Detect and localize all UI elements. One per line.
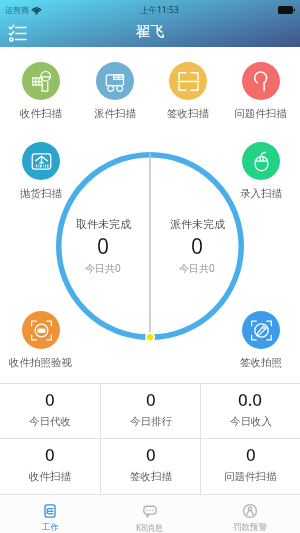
staticText: 翟飞 — [136, 23, 164, 41]
staticText: 抛货扫描 — [20, 187, 62, 200]
button[interactable]: 签收扫描 — [151, 62, 224, 120]
staticText: 0.0 — [238, 388, 263, 411]
staticText: 录入扫描 — [240, 187, 282, 200]
button[interactable]: 收件扫描 — [4, 62, 78, 120]
staticText: 今日共0 — [179, 261, 215, 275]
button[interactable]: 罚款预警 — [200, 495, 300, 533]
staticText: 上午11:53 — [140, 4, 179, 16]
staticText: 0 — [146, 443, 156, 466]
staticText: 取件未完成 — [76, 217, 131, 231]
button[interactable]: 0.0 — [201, 384, 300, 438]
staticText: 问题件扫描 — [224, 470, 277, 483]
staticText: 派件扫描 — [94, 107, 136, 120]
staticText: 今日排行 — [130, 415, 172, 428]
staticText: 0 — [191, 232, 204, 261]
staticText: 0 — [45, 443, 55, 466]
button[interactable]: 录入扫描 — [224, 142, 297, 200]
button[interactable]: Menu — [5, 21, 29, 45]
button[interactable]: 0 — [101, 439, 200, 494]
staticText: 0 — [45, 388, 55, 411]
staticText: 运营商 — [5, 5, 29, 15]
button[interactable]: 收件拍照验视 — [4, 311, 77, 369]
staticText: 今日共0 — [85, 261, 121, 275]
staticText: 0 — [146, 388, 156, 411]
button[interactable]: 0 — [0, 439, 100, 494]
button[interactable]: 抛货扫描 — [4, 142, 77, 200]
staticText: 问题件扫描 — [234, 107, 287, 120]
staticText: 收件拍照验视 — [9, 356, 72, 369]
staticText: 0 — [97, 232, 110, 261]
staticText: 今日代收 — [29, 415, 71, 428]
button[interactable]: 工作 — [0, 495, 100, 533]
staticText: 派件未完成 — [170, 217, 225, 231]
staticText: 今日收入 — [230, 415, 272, 428]
button[interactable]: 问题件扫描 — [224, 62, 297, 120]
staticText: 工作 — [42, 522, 59, 533]
button[interactable]: 派件扫描 — [78, 62, 151, 120]
staticText: 签收扫描 — [167, 107, 209, 120]
button[interactable]: 0 — [0, 384, 100, 438]
staticText: 收件扫描 — [29, 470, 71, 483]
staticText: 罚款预警 — [233, 522, 267, 533]
staticText: 签收扫描 — [130, 470, 172, 483]
button[interactable]: 签收拍照 — [224, 311, 297, 369]
staticText: 收件扫描 — [20, 107, 62, 120]
button[interactable]: 0 — [101, 384, 200, 438]
button[interactable]: 0 — [201, 439, 300, 494]
staticText: K8消息 — [136, 522, 164, 533]
staticText: 签收拍照 — [240, 356, 282, 369]
staticText: 0 — [246, 443, 256, 466]
button[interactable]: K8消息 — [100, 495, 200, 533]
